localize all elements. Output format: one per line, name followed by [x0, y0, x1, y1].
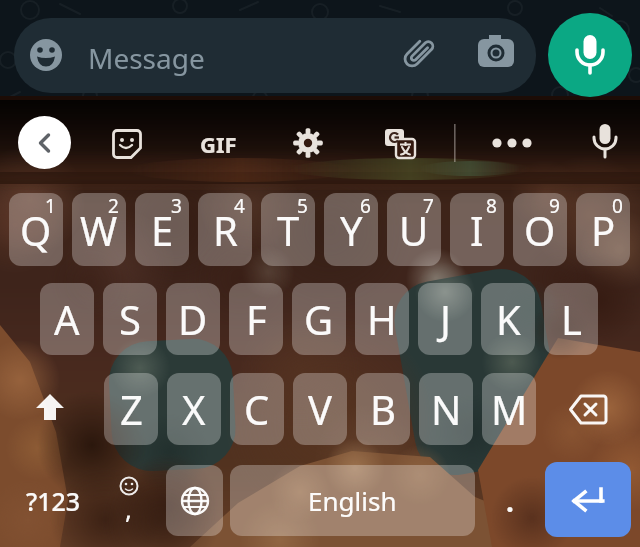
- button[interactable]: M: [482, 373, 536, 445]
- button[interactable]: F: [229, 283, 283, 355]
- staticText: I: [470, 203, 484, 257]
- staticText: B: [370, 382, 396, 436]
- staticText: T: [277, 203, 300, 257]
- staticText: D: [178, 292, 208, 346]
- staticText: 7: [423, 193, 434, 219]
- button[interactable]: ,: [103, 465, 155, 536]
- staticText: 1: [45, 193, 56, 219]
- button[interactable]: English: [230, 465, 475, 536]
- staticText: 9: [549, 193, 560, 219]
- staticText: O: [524, 203, 556, 257]
- staticText: ,: [125, 491, 132, 526]
- button[interactable]: P: [576, 193, 630, 266]
- staticText: 4: [234, 193, 245, 219]
- staticText: Y: [340, 203, 363, 257]
- button[interactable]: .: [487, 465, 533, 536]
- staticText: G: [304, 292, 334, 346]
- button[interactable]: X: [167, 373, 221, 445]
- button[interactable]: [560, 381, 616, 437]
- staticText: F: [246, 292, 267, 346]
- button[interactable]: C: [230, 373, 284, 445]
- button[interactable]: Y: [324, 193, 378, 266]
- button[interactable]: [545, 462, 631, 537]
- staticText: ?123: [26, 484, 81, 518]
- button[interactable]: [487, 128, 537, 158]
- button[interactable]: R: [198, 193, 252, 266]
- staticText: P: [591, 203, 616, 257]
- button[interactable]: [382, 126, 418, 162]
- staticText: 8: [486, 193, 497, 219]
- staticText: A: [54, 292, 80, 346]
- button[interactable]: G: [292, 283, 346, 355]
- staticText: English: [308, 483, 397, 518]
- staticText: 6: [360, 193, 371, 219]
- button[interactable]: [588, 122, 622, 164]
- button[interactable]: S: [103, 283, 157, 355]
- staticText: 0: [612, 193, 623, 219]
- staticText: 3: [171, 193, 182, 219]
- button[interactable]: Z: [104, 373, 158, 445]
- button[interactable]: ?123: [16, 465, 90, 536]
- staticText: R: [213, 203, 238, 257]
- button[interactable]: A: [40, 283, 94, 355]
- button[interactable]: T: [261, 193, 315, 266]
- staticText: V: [308, 382, 332, 436]
- button[interactable]: W: [72, 193, 126, 266]
- staticText: S: [119, 292, 141, 346]
- button[interactable]: [292, 127, 324, 159]
- button[interactable]: V: [293, 373, 347, 445]
- button[interactable]: H: [355, 283, 409, 355]
- staticText: E: [151, 203, 174, 257]
- staticText: 5: [297, 193, 308, 219]
- button[interactable]: B: [356, 373, 410, 445]
- staticText: Message: [88, 39, 205, 77]
- button[interactable]: I: [450, 193, 504, 266]
- button[interactable]: [22, 381, 78, 437]
- staticText: .: [506, 482, 514, 520]
- button[interactable]: L: [544, 283, 598, 355]
- button[interactable]: [18, 116, 71, 169]
- button[interactable]: E: [135, 193, 189, 266]
- staticText: H: [367, 292, 397, 346]
- button[interactable]: [166, 465, 223, 536]
- button[interactable]: [548, 13, 632, 97]
- staticText: C: [244, 382, 270, 436]
- staticText: GIF: [200, 129, 237, 159]
- button[interactable]: K: [481, 283, 535, 355]
- button[interactable]: Message: [14, 18, 536, 93]
- staticText: L: [561, 292, 582, 346]
- button[interactable]: O: [513, 193, 567, 266]
- button[interactable]: Q: [9, 193, 63, 266]
- button[interactable]: [111, 128, 143, 160]
- staticText: W: [80, 203, 118, 257]
- button[interactable]: D: [166, 283, 220, 355]
- staticText: U: [399, 203, 429, 257]
- button[interactable]: N: [419, 373, 473, 445]
- staticText: Q: [20, 203, 52, 257]
- button[interactable]: U: [387, 193, 441, 266]
- staticText: Z: [120, 382, 143, 436]
- staticText: X: [182, 382, 206, 436]
- button[interactable]: J: [418, 283, 472, 355]
- staticText: M: [491, 382, 528, 436]
- button[interactable]: GIF: [192, 126, 244, 162]
- staticText: N: [431, 382, 462, 436]
- staticText: 2: [108, 193, 119, 219]
- staticText: J: [440, 292, 451, 346]
- staticText: K: [496, 292, 521, 346]
